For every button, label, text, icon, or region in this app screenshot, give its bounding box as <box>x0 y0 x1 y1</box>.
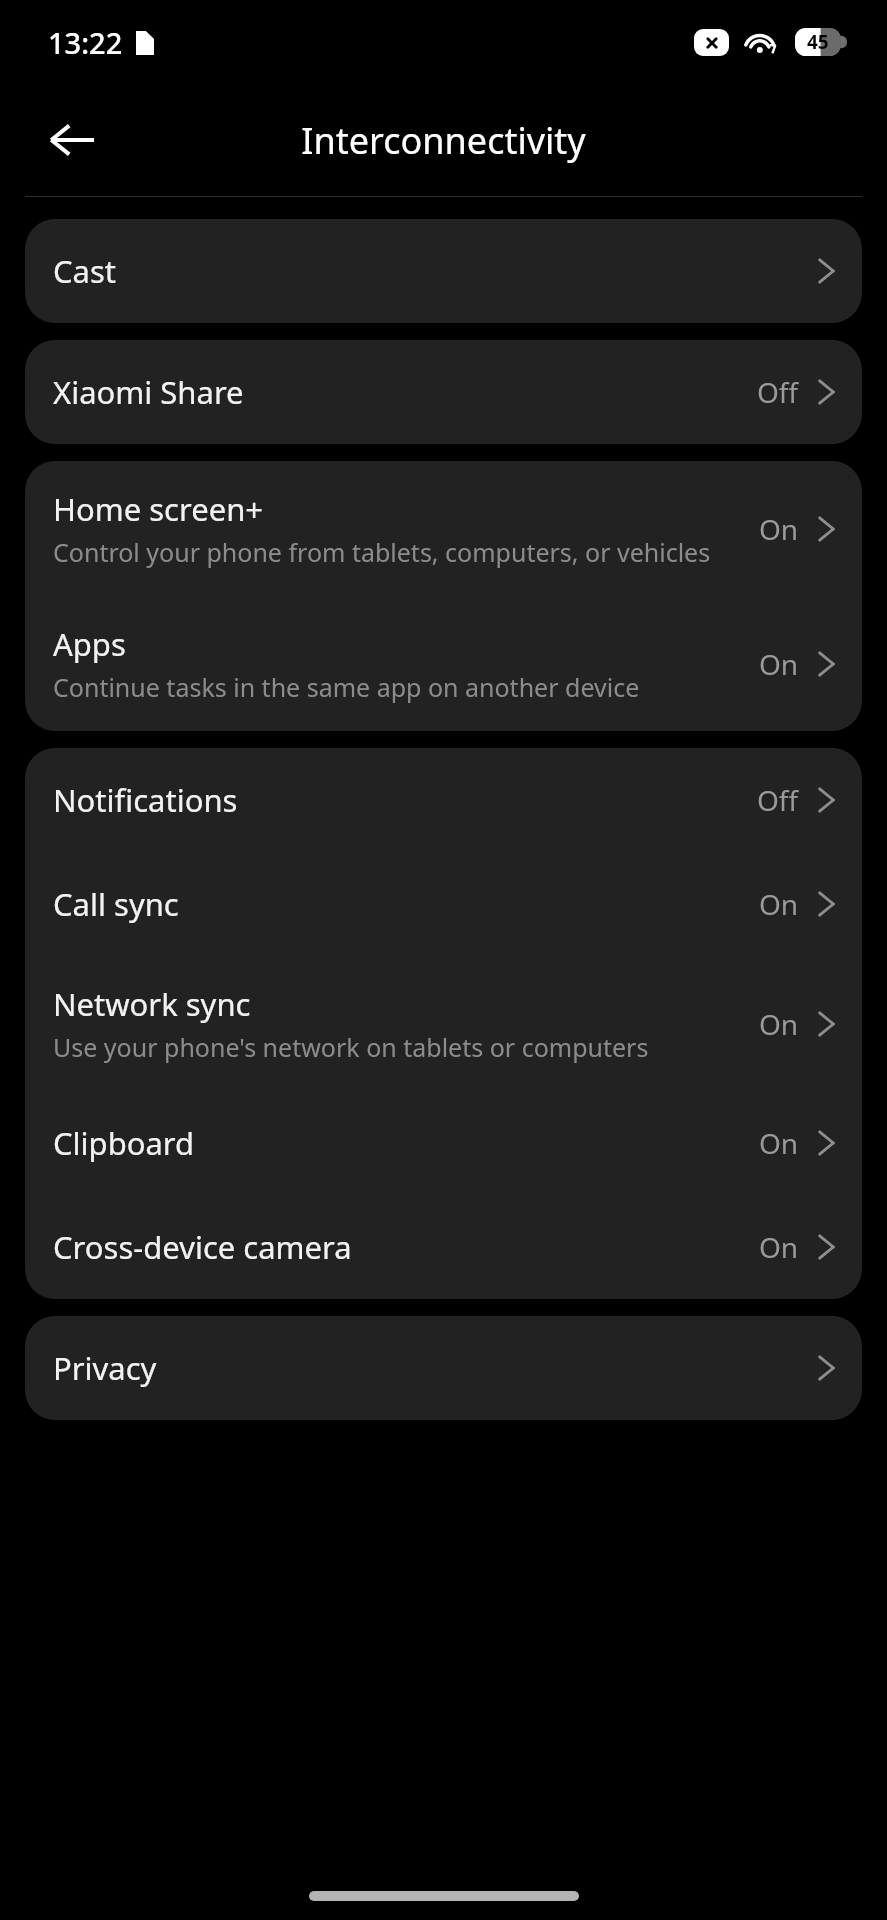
staticText: Continue tasks in the same app on anothe… <box>53 670 640 704</box>
staticText: Cast <box>53 250 117 292</box>
staticText: Use your phone's network on tablets or c… <box>53 1030 649 1064</box>
staticText: On <box>759 645 799 683</box>
staticText: Control your phone from tablets, compute… <box>53 535 711 569</box>
staticText: Interconnectivity <box>301 116 586 165</box>
staticText: Xiaomi Share <box>53 371 244 413</box>
staticText: Clipboard <box>53 1122 195 1164</box>
button[interactable]: Cross-device camera <box>25 1195 862 1299</box>
button[interactable]: Home screen+ <box>25 461 862 596</box>
staticText: On <box>759 1124 799 1162</box>
staticText: 13:22 <box>48 23 123 62</box>
staticText: On <box>759 1005 799 1043</box>
staticText: 45 <box>807 29 829 55</box>
staticText: Off <box>757 781 799 819</box>
button[interactable]: Apps <box>25 596 862 731</box>
staticText: Cross-device camera <box>53 1226 352 1268</box>
button[interactable]: Call sync <box>25 852 862 956</box>
staticText: Home screen+ <box>53 488 264 530</box>
staticText: Apps <box>53 623 126 665</box>
button[interactable]: Back <box>30 98 114 182</box>
button[interactable]: Network sync <box>25 956 862 1091</box>
staticText: Privacy <box>53 1347 157 1389</box>
button[interactable]: Privacy <box>25 1316 862 1420</box>
staticText: On <box>759 510 799 548</box>
staticText: Notifications <box>53 779 238 821</box>
button[interactable]: Clipboard <box>25 1091 862 1195</box>
staticText: Off <box>757 373 799 411</box>
staticText: On <box>759 885 799 923</box>
staticText: On <box>759 1228 799 1266</box>
button[interactable]: Notifications <box>25 748 862 852</box>
staticText: Network sync <box>53 983 251 1025</box>
button[interactable]: Cast <box>25 219 862 323</box>
button[interactable]: Xiaomi Share <box>25 340 862 444</box>
staticText: Call sync <box>53 883 179 925</box>
